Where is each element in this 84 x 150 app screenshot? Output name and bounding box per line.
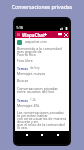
staticText: Bienvenido a la comunidad mas grande de … (17, 46, 67, 57)
button[interactable]: Home (38, 131, 46, 138)
staticText: Temas (17, 66, 29, 71)
button[interactable]: Recent apps (54, 131, 62, 138)
staticText: Mensajes nuevos (17, 71, 46, 76)
button[interactable]: Back (23, 131, 31, 138)
staticText: WapaChat (22, 32, 45, 38)
staticText: Temas (17, 98, 29, 103)
staticText: wapachat.com (25, 40, 47, 44)
button[interactable]: wapachat.com (15, 38, 69, 46)
staticText: Foro libre (17, 58, 33, 63)
staticText: Conversaciones privadas (0, 3, 84, 10)
staticText: Mensajes 45k (17, 103, 40, 108)
staticText: 1:16 (16, 25, 23, 30)
button[interactable]: New message (42, 31, 48, 38)
button[interactable]: Open navigation menu (15, 31, 21, 38)
staticText: 1.2k (30, 98, 36, 102)
button[interactable]: Chats (57, 31, 63, 38)
staticText: de hoy (30, 66, 40, 70)
staticText: Buscar (17, 78, 29, 83)
staticText: Conversaciones privadas entre usuarios d… (17, 86, 67, 94)
staticText: Las conversaciones privadas te permiten … (17, 110, 67, 130)
button[interactable]: Search (63, 31, 69, 38)
